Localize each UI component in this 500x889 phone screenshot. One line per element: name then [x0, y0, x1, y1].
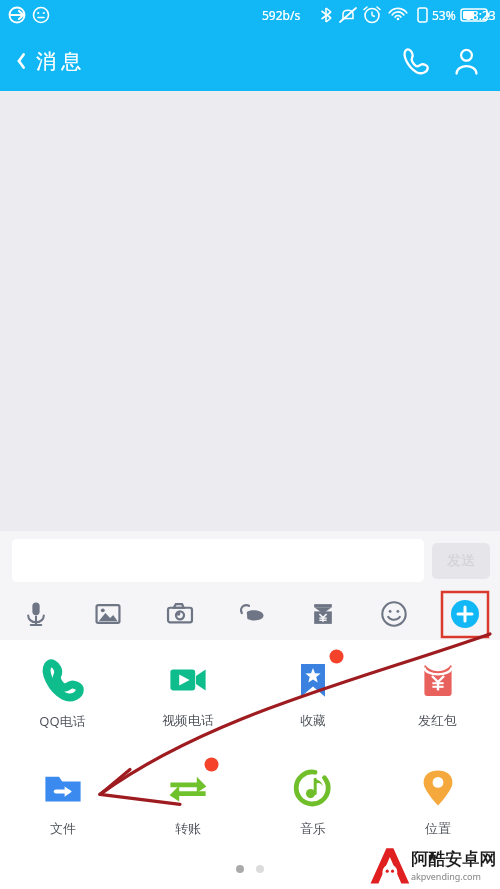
staticText: 发红包 [418, 712, 457, 728]
button[interactable]: 音乐 [250, 760, 375, 858]
button[interactable]: QQ电话 [0, 652, 125, 750]
staticText: 文件 [50, 820, 76, 836]
button[interactable]: Photo [85, 591, 131, 637]
staticText: 阿酷安卓网 [411, 849, 496, 870]
button[interactable]: Voice [13, 591, 59, 637]
button[interactable]: 消 息 [0, 41, 94, 80]
button[interactable]: Emoji [371, 591, 417, 637]
staticText: 音乐 [300, 820, 326, 836]
button[interactable]: 发送 [432, 543, 490, 579]
staticText: 08:23 [465, 7, 496, 23]
button[interactable]: 文件 [0, 760, 125, 858]
button[interactable]: Red packet [300, 591, 346, 637]
staticText: 592b/s [262, 7, 301, 23]
button[interactable]: 发红包 [375, 652, 500, 750]
button[interactable]: 收藏 [250, 652, 375, 750]
button[interactable]: Profile [444, 39, 488, 83]
button[interactable]: Shake [229, 591, 275, 637]
staticText: 位置 [425, 820, 451, 836]
button[interactable]: 转账 [125, 760, 250, 858]
staticText: 收藏 [300, 712, 326, 728]
staticText: 发送 [447, 552, 475, 570]
staticText: akpvending.com [411, 870, 481, 882]
button[interactable]: More [442, 591, 488, 637]
staticText: QQ电话 [39, 712, 86, 730]
button[interactable]: Call [394, 39, 438, 83]
button[interactable]: 位置 [375, 760, 500, 858]
button[interactable]: Camera [157, 591, 203, 637]
button[interactable]: 视频电话 [125, 652, 250, 750]
staticText: 53% [432, 7, 456, 23]
staticText: 消 息 [36, 47, 82, 74]
staticText: 视频电话 [162, 712, 214, 728]
staticText: 转账 [175, 820, 201, 836]
